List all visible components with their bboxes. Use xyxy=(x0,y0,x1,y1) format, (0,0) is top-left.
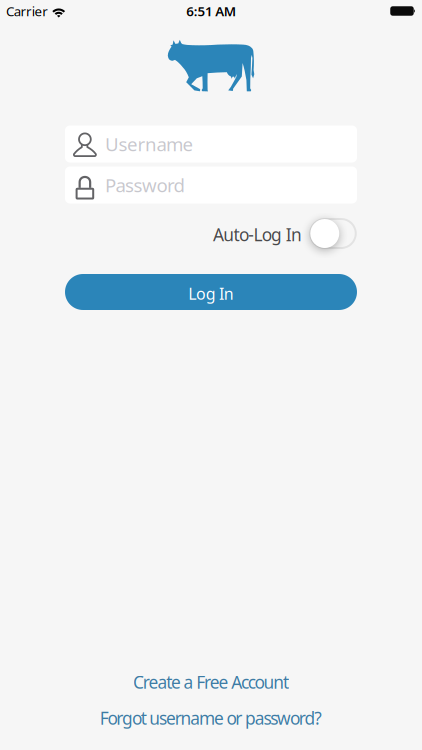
staticText: Log In xyxy=(188,283,234,304)
staticText: Username xyxy=(105,132,193,156)
button[interactable]: Create a Free Account xyxy=(133,670,289,693)
staticText: Create a Free Account xyxy=(133,670,289,693)
button[interactable]: Forgot username or password? xyxy=(100,706,322,729)
staticText: Password xyxy=(105,173,184,197)
staticText: 6:51 AM xyxy=(186,2,236,20)
staticText: Forgot username or password? xyxy=(100,706,322,729)
button[interactable]: Auto-Log In xyxy=(309,218,357,249)
button[interactable]: Log In xyxy=(65,274,357,310)
button[interactable]: Password xyxy=(65,166,357,203)
staticText: Carrier xyxy=(6,2,48,20)
staticText: Auto-Log In xyxy=(213,223,302,246)
button[interactable]: Username xyxy=(65,125,357,162)
